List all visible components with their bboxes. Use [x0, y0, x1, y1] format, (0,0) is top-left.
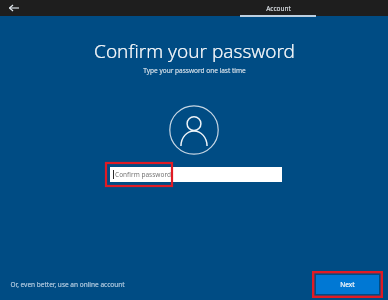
staticText: Next — [340, 280, 355, 289]
button[interactable]: Or, even better, use an online account — [10, 277, 125, 291]
staticText: Confirm your password — [94, 38, 295, 64]
button[interactable]: Back — [4, 0, 24, 16]
staticText: Account — [266, 4, 291, 13]
button[interactable]: Account — [240, 0, 316, 16]
staticText: Type your password one last time — [143, 66, 246, 75]
staticText: Or, even better, use an online account — [10, 280, 125, 289]
button[interactable]: Confirm password — [110, 167, 282, 182]
button[interactable]: Next — [316, 275, 379, 294]
staticText: Confirm password — [115, 170, 171, 179]
